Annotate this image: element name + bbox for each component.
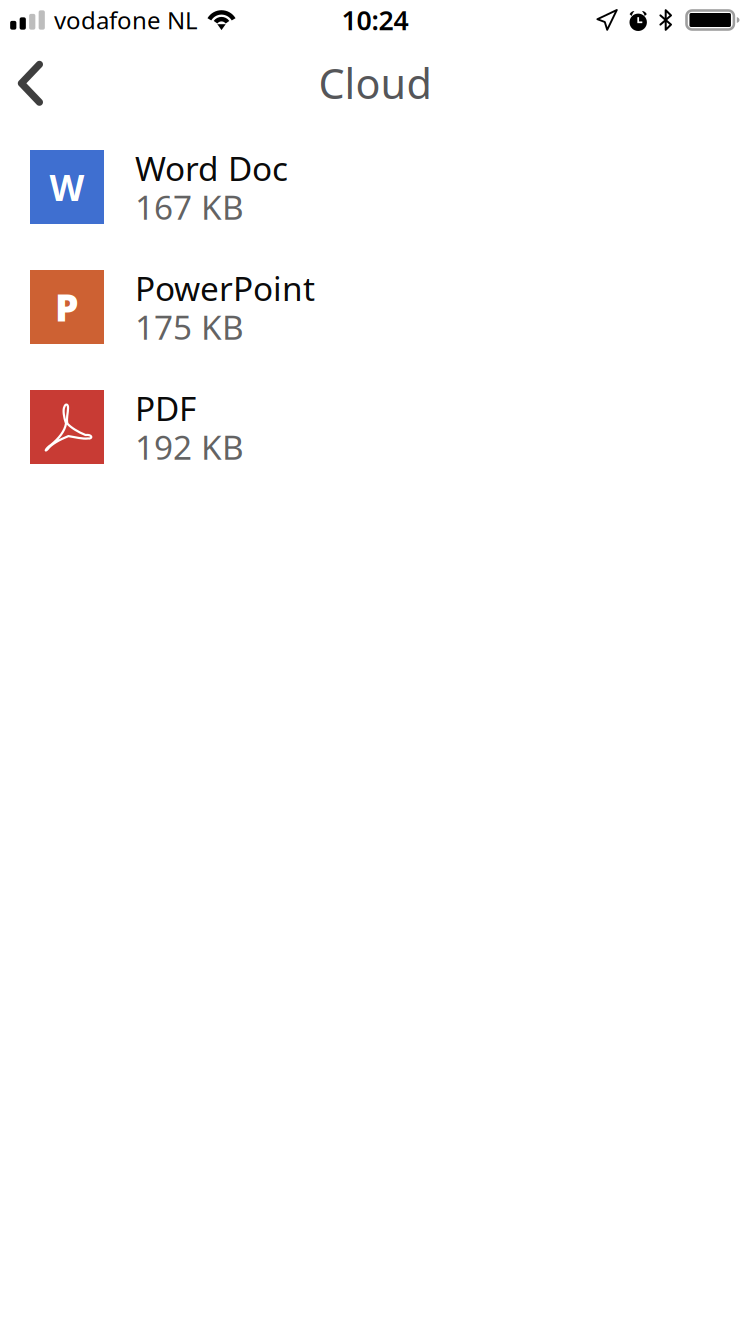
staticText: 167 KB bbox=[135, 185, 244, 229]
staticText: PDF bbox=[135, 386, 196, 430]
staticText: 192 KB bbox=[135, 425, 244, 469]
staticText: P bbox=[55, 282, 79, 332]
button[interactable]: PDF, 192 KB bbox=[0, 390, 750, 510]
button[interactable]: PowerPoint, 175 KB bbox=[0, 270, 750, 390]
staticText: Cloud bbox=[318, 56, 431, 110]
staticText: 175 KB bbox=[135, 305, 244, 349]
staticText: PowerPoint bbox=[135, 266, 315, 310]
staticText: 10:24 bbox=[341, 2, 408, 38]
button[interactable]: Back bbox=[0, 40, 62, 110]
staticText: vodafone NL bbox=[54, 4, 198, 36]
button[interactable]: Word Doc, 167 KB bbox=[0, 150, 750, 270]
staticText: W bbox=[49, 163, 84, 211]
staticText: Word Doc bbox=[135, 146, 288, 190]
